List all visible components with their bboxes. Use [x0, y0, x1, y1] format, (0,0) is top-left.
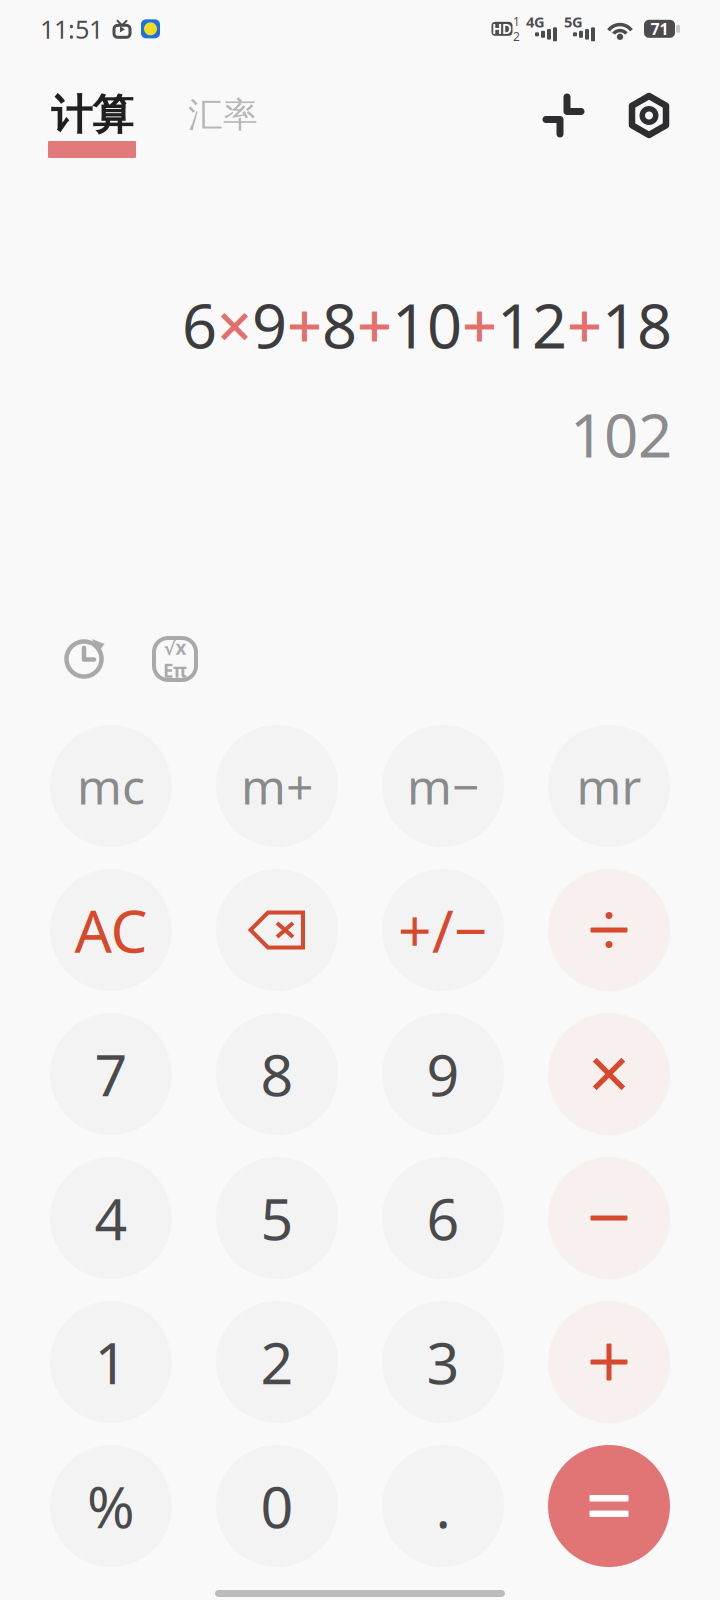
button[interactable]: 8	[194, 1002, 360, 1146]
staticText: m+	[241, 754, 313, 818]
button[interactable]: Minus	[526, 1146, 692, 1290]
staticText: √x	[163, 635, 186, 660]
staticText: 2	[260, 1324, 293, 1400]
staticText: 1	[94, 1324, 127, 1400]
staticText: 12	[497, 284, 567, 365]
staticText: +	[357, 284, 392, 365]
staticText: 1	[513, 13, 520, 29]
staticText: 18	[602, 284, 672, 365]
staticText: +/−	[398, 891, 488, 969]
staticText: 6	[426, 1180, 459, 1256]
staticText: 8	[322, 284, 357, 365]
button[interactable]: +/−	[360, 858, 526, 1002]
button[interactable]: 5	[194, 1146, 360, 1290]
button[interactable]: Multiply	[526, 1002, 692, 1146]
button[interactable]: Divide	[526, 858, 692, 1002]
button[interactable]: .	[360, 1434, 526, 1578]
button[interactable]: Plus	[526, 1290, 692, 1434]
staticText: 11:51	[40, 12, 103, 46]
button[interactable]: 计算	[48, 89, 136, 158]
button[interactable]: 3	[360, 1290, 526, 1434]
button[interactable]: mr	[526, 714, 692, 858]
button[interactable]: Scientific mode	[154, 638, 196, 680]
button[interactable]: Equals	[526, 1434, 692, 1578]
staticText: %	[87, 1468, 135, 1544]
button[interactable]: 1	[28, 1290, 194, 1434]
button[interactable]: Floating window	[543, 93, 584, 138]
staticText: 102	[570, 394, 672, 474]
staticText: 9	[426, 1036, 459, 1112]
button[interactable]: 汇率	[188, 89, 258, 158]
staticText: 计算	[51, 90, 133, 140]
button[interactable]: 7	[28, 1002, 194, 1146]
staticText: +	[287, 284, 322, 365]
staticText: 3	[426, 1324, 459, 1400]
staticText: 5	[260, 1180, 293, 1256]
button[interactable]: 2	[194, 1290, 360, 1434]
button[interactable]: %	[28, 1434, 194, 1578]
button[interactable]: 6	[360, 1146, 526, 1290]
button[interactable]: 9	[360, 1002, 526, 1146]
staticText: ×	[217, 284, 252, 365]
button[interactable]: mc	[28, 714, 194, 858]
button[interactable]: Settings	[628, 93, 670, 137]
button[interactable]: AC	[28, 858, 194, 1002]
staticText: .	[435, 1468, 450, 1544]
staticText: HD	[492, 20, 512, 38]
button[interactable]: Delete	[194, 858, 360, 1002]
staticText: 71	[650, 18, 668, 39]
staticText: 5G	[564, 12, 583, 32]
button[interactable]: m+	[194, 714, 360, 858]
staticText: +	[462, 284, 497, 365]
button[interactable]: 4	[28, 1146, 194, 1290]
staticText: m−	[407, 754, 479, 818]
button[interactable]: 0	[194, 1434, 360, 1578]
staticText: +	[567, 284, 602, 365]
staticText: AC	[74, 891, 147, 969]
staticText: 7	[94, 1036, 127, 1112]
staticText: 4	[94, 1180, 127, 1256]
button[interactable]: m−	[360, 714, 526, 858]
staticText: mr	[576, 754, 641, 818]
staticText: 10	[392, 284, 462, 365]
staticText: 6	[182, 284, 217, 365]
staticText: 0	[260, 1468, 293, 1544]
staticText: 2	[513, 28, 520, 44]
staticText: 9	[252, 284, 287, 365]
button[interactable]: History	[64, 638, 105, 680]
staticText: 4G	[526, 12, 545, 32]
staticText: mc	[77, 754, 145, 818]
staticText: 8	[260, 1036, 293, 1112]
staticText: 汇率	[188, 94, 258, 136]
staticText: Eπ	[163, 658, 187, 683]
